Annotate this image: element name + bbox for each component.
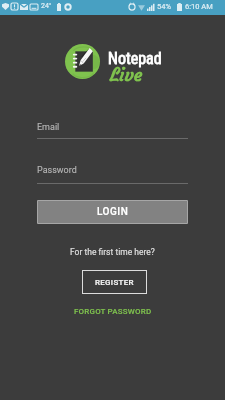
other: Notepad Live logo	[65, 44, 100, 79]
button[interactable]: FORGOT PASSWORD	[68, 305, 158, 318]
staticText: 54%	[157, 2, 171, 11]
staticText: 24°	[41, 2, 52, 10]
button[interactable]: REGISTER	[82, 270, 147, 294]
staticText: 6:10 AM	[185, 2, 213, 11]
staticText: Email	[37, 122, 60, 133]
button[interactable]: Password	[37, 155, 188, 184]
staticText: REGISTER	[95, 278, 134, 287]
button[interactable]: Email	[37, 112, 188, 139]
staticText: LOGIN	[97, 206, 129, 218]
staticText: For the first time here?	[70, 247, 155, 257]
button[interactable]: LOGIN	[37, 200, 188, 224]
staticText: FORGOT PASSWORD	[74, 307, 152, 316]
staticText: Notepad	[108, 49, 162, 68]
staticText: Password	[37, 165, 77, 176]
staticText: Live	[110, 63, 143, 86]
